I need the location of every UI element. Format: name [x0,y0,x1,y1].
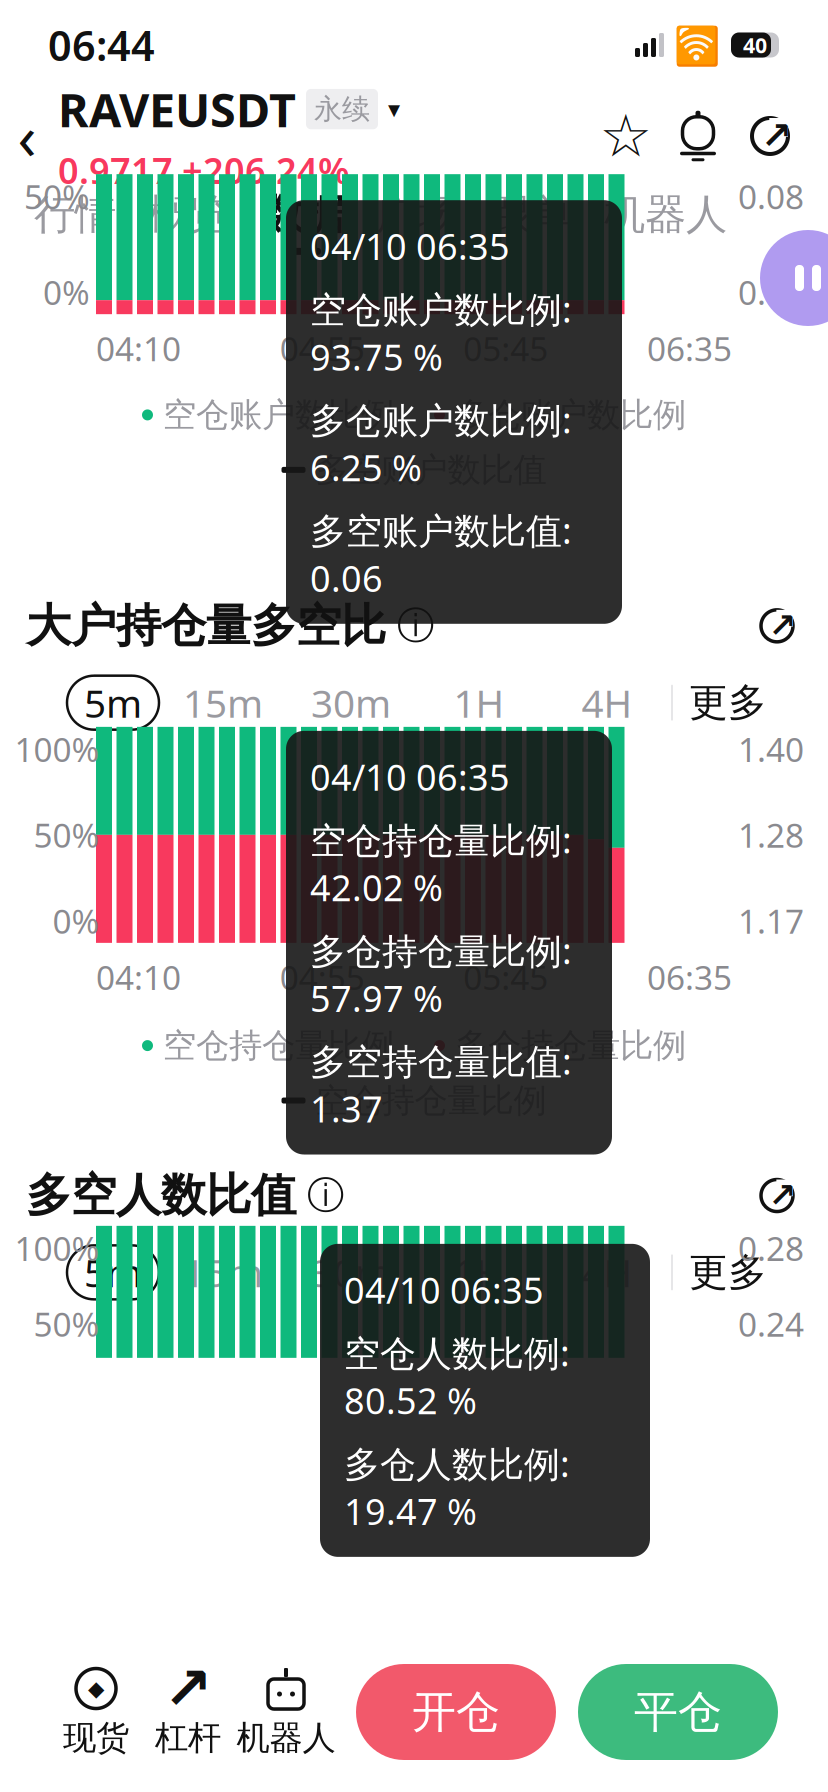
staticText: 跟单 [490,189,572,240]
staticText: ↗ [768,1176,796,1214]
staticText: 06:35 [647,326,732,370]
staticText: 1.28 [738,813,804,857]
staticText: 100% [14,727,99,771]
staticText: 0.06 [738,270,804,314]
staticText: ↗ [761,114,792,156]
button[interactable]: 更多 [673,1245,783,1299]
button[interactable]: Assistant [760,230,828,326]
button[interactable]: 1H [415,1245,543,1299]
button[interactable]: Share chart [752,601,802,651]
staticText: 多仓持仓量比例: 57.97 % [310,926,572,1022]
staticText: 数据 [262,189,344,240]
staticText: 开仓 [412,1685,500,1739]
staticText: 4H [581,677,632,728]
button[interactable]: 更多 [673,676,783,730]
staticText: 大户持仓量多空比 [26,598,386,654]
staticText: 🛜 [664,20,730,70]
staticText: 06:44 [48,18,155,72]
staticText: ◆ [88,1676,104,1701]
staticText: 空仓账户数比例 [163,394,394,435]
staticText: 04:55 [280,326,365,370]
staticText: 0.28 [738,1226,804,1270]
button[interactable]: 4H [543,676,671,730]
button[interactable]: 平仓 [578,1664,778,1760]
staticText: 行情 [34,189,116,240]
staticText: 4H [581,1247,632,1298]
staticText: 04:10 [96,326,181,370]
staticText: 50% [24,174,90,218]
staticText: 多空账户数比值: 0.06 [310,506,572,602]
staticText: 0% [43,270,90,314]
staticText: ⓘ [386,603,434,649]
staticText: 50% [33,1302,99,1346]
button[interactable]: 30m [287,676,415,730]
staticText: 1.17 [738,899,804,943]
staticText: 广场 [376,189,458,240]
staticText: 杠杆 [155,1717,221,1758]
button[interactable]: ◆ [50,1665,142,1758]
button[interactable]: 4H [543,1245,671,1299]
staticText: 04:55 [280,955,365,999]
staticText: ☆ [599,103,652,169]
staticText: 多空账户数比值 [315,449,546,490]
staticText: 05:45 [463,326,548,370]
button[interactable]: Price alert [676,106,720,166]
staticText: 04/10 06:35 [310,222,510,270]
staticText: 1H [453,1247,504,1298]
staticText: RAVEUSDT [58,78,296,140]
staticText: 多仓账户数比例 [455,394,686,435]
staticText: 多空持仓量比值: 1.37 [310,1037,572,1132]
button[interactable]: 5m [67,1245,159,1299]
staticText: 更多 [689,1249,767,1296]
staticText: 15m [183,677,263,728]
staticText: 多仓持仓量比例 [455,1025,686,1066]
button[interactable]: ↗ [142,1665,234,1758]
staticText: 1.40 [738,727,804,771]
staticText: 30m [311,677,391,728]
button[interactable]: Favorite [602,106,650,166]
button[interactable]: 机器人 [588,182,743,262]
button[interactable]: 1H [415,676,543,730]
staticText: 空仓账户数比例: 93.75 % [310,285,572,381]
staticText: 多仓账户数比例: 6.25 % [310,396,572,491]
button[interactable]: 15m [159,676,287,730]
staticText: 0.24 [738,1302,804,1346]
button[interactable]: Share chart [752,1170,802,1220]
staticText: 更多 [689,679,767,726]
button[interactable]: 概览 [132,182,246,262]
staticText: 0.08 [738,174,804,218]
staticText: 现货 [63,1717,129,1758]
staticText: 空仓人数比例: 80.52 % [344,1329,570,1424]
button[interactable]: 机器人 [234,1665,338,1758]
staticText: ‹ [17,95,36,177]
staticText: 空仓持仓量比例 [315,1080,546,1121]
staticText: 05:45 [463,955,548,999]
staticText: 机器人 [604,189,727,240]
staticText: 40 [743,31,767,59]
button[interactable]: 行情 [18,182,132,262]
staticText: 平仓 [634,1685,722,1739]
button[interactable]: Back [0,91,54,181]
button[interactable]: 开仓 [356,1664,556,1760]
staticText: 多空人数比值 [26,1168,296,1223]
button[interactable]: 30m [287,1245,415,1299]
staticText: 06:35 [647,955,732,999]
staticText: 1H [453,677,504,728]
staticText: 概览 [148,189,230,240]
staticText: 永续 [314,92,370,126]
staticText: 04:10 [96,955,181,999]
button[interactable]: 数据 [246,182,360,262]
staticText: ↗ [163,1655,212,1722]
button[interactable]: 5m [67,676,159,730]
staticText: ▾ [388,95,400,123]
staticText: 空仓持仓量比例: 42.02 % [310,816,572,911]
button[interactable]: 广场 [360,182,474,262]
button[interactable]: 15m [159,1245,287,1299]
staticText: 04/10 06:35 [310,753,510,801]
staticText: 30m [311,1247,391,1298]
button[interactable]: 跟单 [474,182,588,262]
staticText: ⓘ [296,1173,344,1218]
staticText: 100% [14,1226,99,1270]
button[interactable]: Share [746,106,794,166]
staticText: 0.9717 +206.24% [58,146,350,194]
